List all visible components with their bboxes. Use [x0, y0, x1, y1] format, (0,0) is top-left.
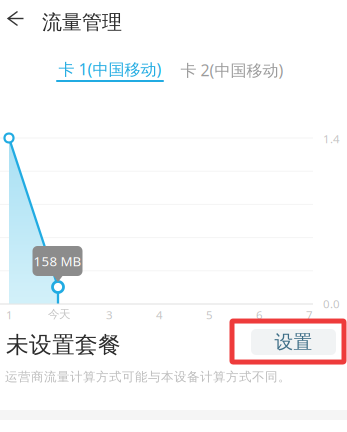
staticText: 1 — [6, 307, 13, 323]
staticText: 5 — [206, 307, 213, 323]
button[interactable]: 卡 1(中国移动) — [56, 58, 164, 82]
staticText: 4 — [156, 307, 163, 323]
staticText: 7 — [306, 307, 313, 323]
staticText: 卡 1(中国移动) — [58, 58, 161, 80]
staticText: 流量管理 — [42, 10, 122, 35]
staticText: 1.4 — [323, 131, 340, 147]
staticText: 运营商流量计算方式可能与本设备计算方式不同。 — [5, 369, 291, 385]
staticText: 0.0 — [323, 296, 340, 312]
staticText: 6 — [256, 307, 263, 323]
staticText: 158 MB — [33, 252, 81, 270]
button[interactable]: 卡 2(中国移动) — [178, 58, 286, 82]
button[interactable]: Back — [0, 0, 34, 37]
staticText: 设置 — [274, 330, 312, 353]
staticText: 今天 — [48, 307, 70, 321]
staticText: 未设置套餐 — [6, 331, 121, 359]
staticText: 3 — [106, 307, 113, 323]
button[interactable]: 设置 — [251, 329, 336, 355]
staticText: 卡 2(中国移动) — [180, 59, 283, 81]
